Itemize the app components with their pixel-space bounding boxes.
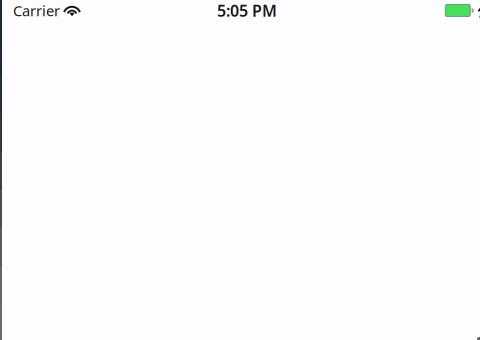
staticText: 5:05 PM: [217, 0, 277, 21]
staticText: Carrier: [13, 1, 60, 20]
